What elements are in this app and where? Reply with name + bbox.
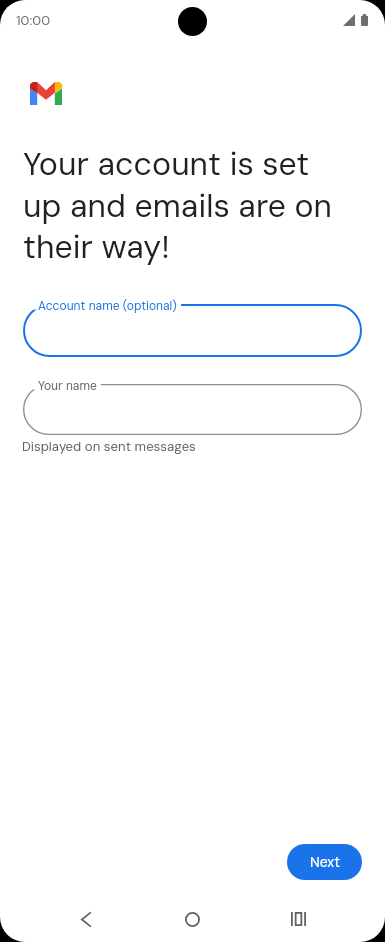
- staticText: Your account is set up and emails are on…: [23, 143, 353, 267]
- button[interactable]: Your name: [23, 384, 362, 435]
- staticText: Displayed on sent messages: [22, 438, 196, 455]
- button[interactable]: Account name (optional): [23, 304, 362, 357]
- button[interactable]: Back: [62, 895, 110, 942]
- button[interactable]: Next: [287, 844, 362, 880]
- staticText: Next: [310, 853, 340, 871]
- staticText: Account name (optional): [38, 298, 177, 314]
- button[interactable]: Home: [168, 895, 216, 942]
- staticText: Your name: [38, 378, 97, 394]
- staticText: 10:00: [16, 12, 51, 30]
- button[interactable]: Recent apps: [274, 895, 322, 942]
